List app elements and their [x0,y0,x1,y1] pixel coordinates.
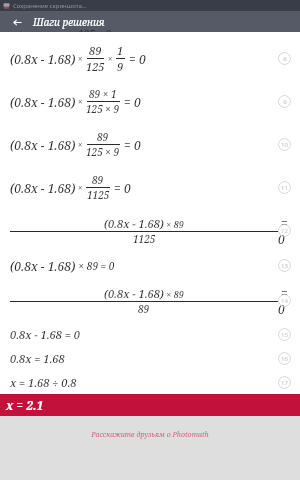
staticText: x = 1.68 ÷ 0.8 [10,375,77,390]
staticText: 14 [281,297,288,305]
button[interactable]: 0.8x = 1.68 [0,346,300,370]
button[interactable]: (0.8x − 1.68) [0,166,300,209]
button[interactable]: 0.8x − 1.68 = 0 [0,322,300,346]
staticText: Сохранение скриншота… [13,2,87,10]
staticText: 125 × 9 [86,145,120,159]
staticText: 0.8x = 1.68 [10,351,65,366]
button[interactable]: Step 10 [278,138,291,151]
staticText: = 0 [126,51,146,67]
staticText: 17 [281,379,288,387]
staticText: × [106,53,115,64]
staticText: 8 [283,55,287,63]
staticText: 125 [86,59,105,74]
staticText: 16 [281,355,288,363]
staticText: × [76,139,85,150]
staticText: 11 [281,184,288,192]
staticText: (0.8x − 1.68) [104,286,164,301]
staticText: 1125 [87,188,110,202]
staticText: × 89 [164,218,184,230]
staticText: × [76,53,85,64]
button[interactable]: Back [9,14,25,30]
button[interactable]: Step 9 [278,95,291,108]
staticText: 89 [97,130,109,144]
staticText: 125 × 9 [86,102,120,116]
staticText: = 0 [111,180,131,196]
staticText: x = 2.1 [6,397,44,413]
staticText: 12 [281,227,288,235]
button[interactable]: Step 17 [278,376,291,389]
staticText: = 0 [121,137,141,153]
staticText: 15 [281,331,288,339]
staticText: Расскажите друзьям о Photomath [91,430,209,440]
button[interactable]: Расскажите друзьям о Photomath [0,416,300,480]
staticText: 125 × 9 [78,27,112,32]
button[interactable]: (0.8x − 1.68) [0,123,300,166]
button[interactable]: (0.8x − 1.68) [0,37,300,80]
staticText: (0.8x − 1.68) [10,137,76,153]
staticText: × [76,182,85,193]
button[interactable]: (0.8x − 1.68) [0,209,300,252]
staticText: 89 × 1 [89,87,117,101]
button[interactable]: Step 12 [278,224,291,237]
staticText: (0.8x − 1.68) [10,94,76,110]
staticText: 89 [89,43,102,58]
staticText: 1125 [133,232,156,246]
button[interactable]: Step 8 [278,52,291,65]
button[interactable]: Step 14 [278,294,291,307]
button[interactable]: Step 11 [278,181,291,194]
staticText: 10 [281,141,288,149]
button[interactable]: (0.8x − 1.68) [0,252,300,279]
staticText: 13 [281,262,288,270]
staticText: Шаги решения [33,15,105,29]
staticText: 0.8x − 1.68 = 0 [10,327,80,342]
button[interactable]: (0.8x − 1.68) [0,279,300,322]
staticText: (0.8x − 1.68) [10,180,76,196]
button[interactable]: Step 16 [278,352,291,365]
staticText: (0.8x − 1.68) [10,51,76,67]
staticText: 89 [92,173,104,187]
staticText: × 89 = 0 [76,259,115,273]
staticText: 1 [117,43,124,58]
staticText: 9 [283,98,287,106]
button[interactable]: (0.8x − 1.68) [0,80,300,123]
staticText: (0.8x − 1.68) [104,216,164,231]
staticText: = 0 [121,94,141,110]
button[interactable]: Step 15 [278,328,291,341]
staticText: 89 [138,302,150,316]
staticText: (0.8x − 1.68) [10,258,76,274]
button[interactable]: x = 1.68 ÷ 0.8 [0,370,300,394]
button[interactable]: Step 13 [278,259,291,272]
staticText: × [76,96,85,107]
staticText: 9 [117,59,124,74]
staticText: × 89 [164,288,184,300]
button[interactable]: x = 2.1 [0,394,300,416]
